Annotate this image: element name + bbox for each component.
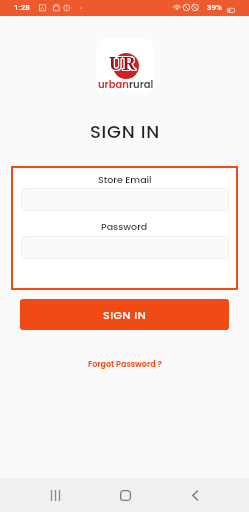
staticText: UR	[109, 51, 136, 76]
button[interactable]: Home	[105, 478, 146, 512]
button[interactable]: Recent apps	[35, 478, 76, 512]
staticText: Password	[101, 220, 148, 233]
staticText: SIGN IN	[103, 307, 147, 322]
button[interactable]	[21, 236, 229, 259]
button[interactable]	[21, 188, 229, 211]
button[interactable]: SIGN IN	[20, 299, 229, 330]
button[interactable]: Back	[175, 478, 216, 512]
staticText: SIGN IN	[90, 119, 160, 144]
staticText: urban	[98, 77, 129, 91]
staticText: Forgot Password ?	[88, 359, 162, 370]
button[interactable]: Forgot Password ?	[82, 355, 168, 374]
staticText: rural	[129, 77, 153, 91]
staticText: 1:28	[14, 3, 30, 12]
staticText: Store Email	[98, 173, 152, 186]
staticText: UR	[109, 51, 136, 76]
staticText: 39%	[207, 3, 222, 12]
